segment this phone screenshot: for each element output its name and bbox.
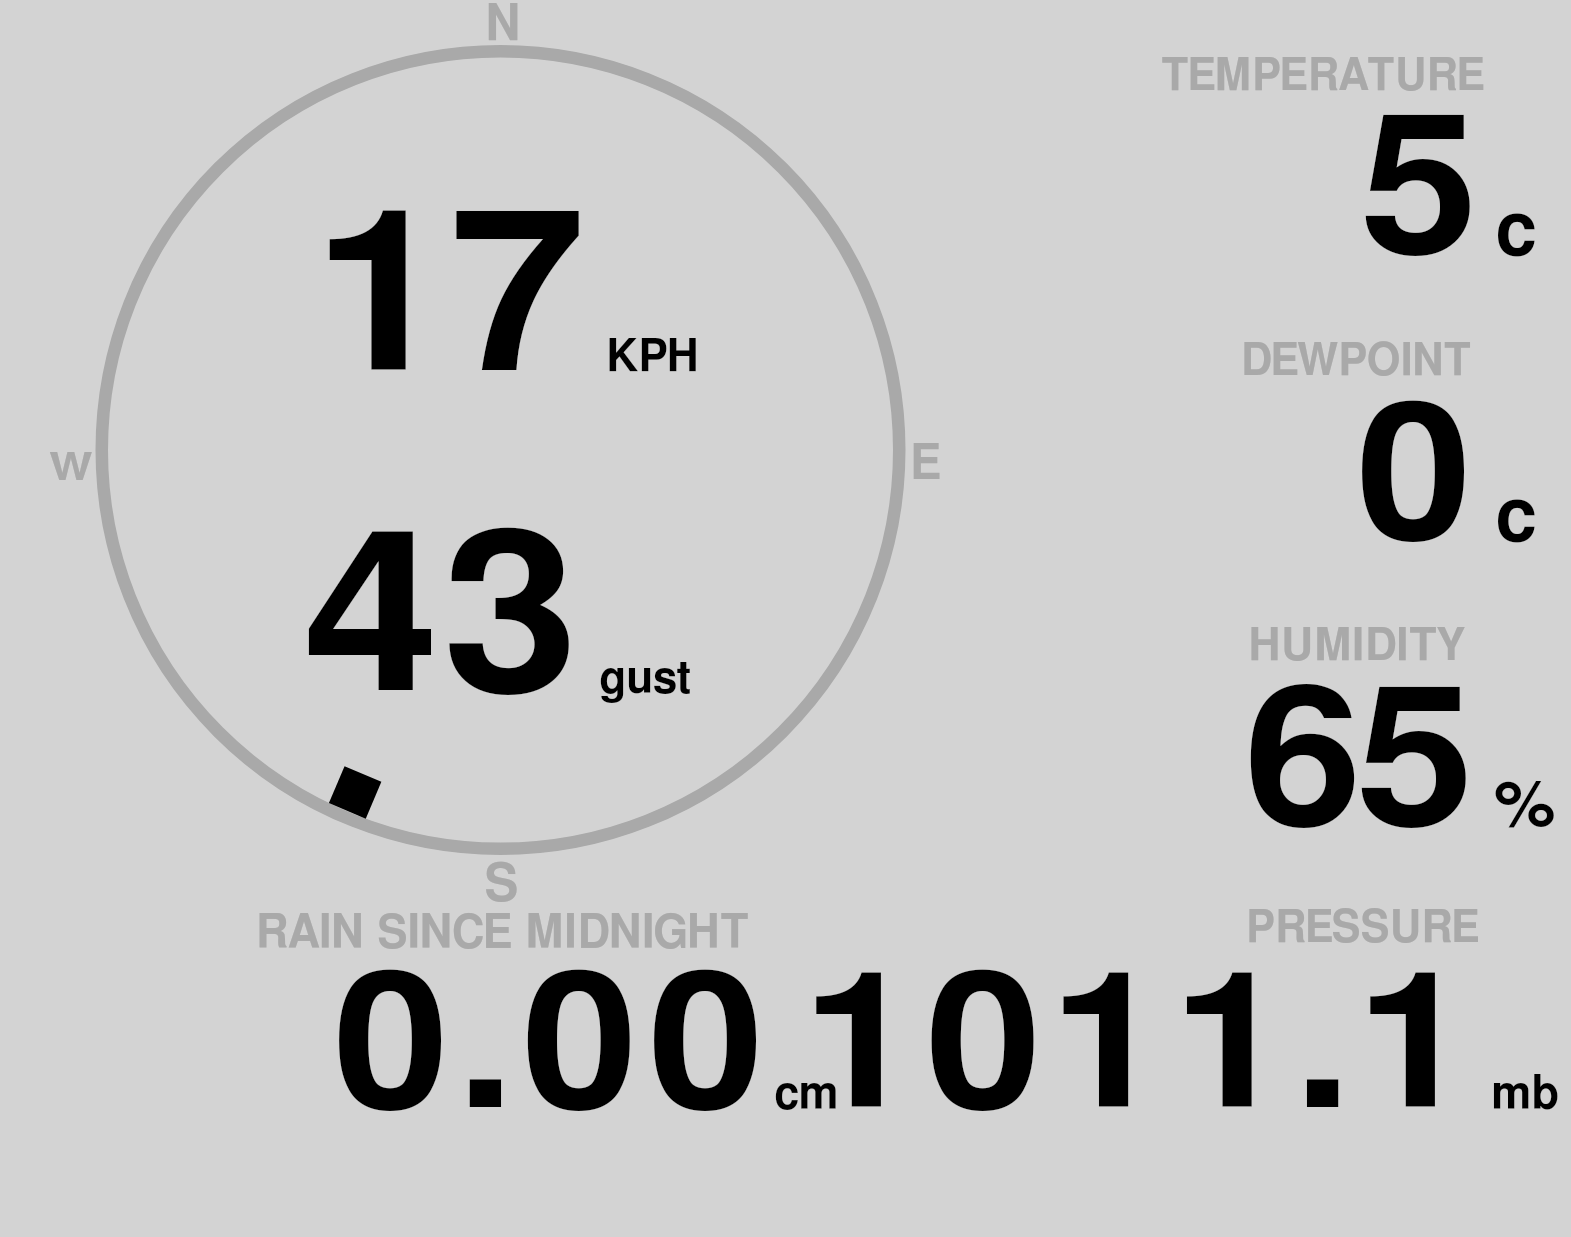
staticText: 5 — [1360, 98, 1479, 291]
staticText: gust — [599, 656, 692, 702]
staticText: S — [484, 859, 519, 912]
staticText: cm — [774, 1071, 839, 1118]
staticText: DEWPOINT — [1241, 339, 1471, 384]
staticText: W — [49, 450, 93, 488]
staticText: 1011.1 — [802, 955, 1481, 1145]
staticText: HUMIDITY — [1248, 623, 1466, 669]
other: Wind direction compass — [0, 0, 1571, 1237]
staticText: mb — [1491, 1071, 1560, 1118]
staticText: c — [1495, 194, 1537, 269]
staticText: 0.00 — [333, 955, 775, 1145]
staticText: 43 — [303, 512, 582, 735]
staticText: 17 — [313, 192, 586, 415]
staticText: TEMPERATURE — [1161, 54, 1485, 99]
staticText: E — [910, 440, 942, 489]
staticText: 0 — [1356, 386, 1473, 576]
staticText: c — [1495, 480, 1537, 555]
staticText: RAIN SINCE MIDNIGHT — [256, 910, 749, 957]
staticText: KPH — [606, 334, 700, 380]
staticText: % — [1494, 776, 1557, 839]
staticText: 65 — [1244, 670, 1468, 863]
staticText: PRESSURE — [1246, 906, 1480, 951]
staticText: N — [485, 0, 521, 50]
